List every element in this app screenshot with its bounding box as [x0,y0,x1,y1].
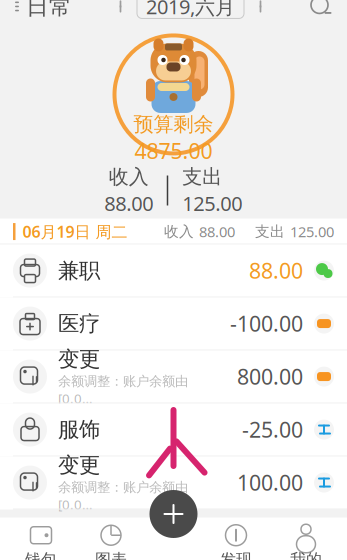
button[interactable]: 搜索 [295,0,347,28]
staticText: 收入 [109,164,149,189]
staticText: 2019,六月 [146,0,235,20]
staticText: 发现 [220,550,252,560]
staticText: 图表 [95,550,127,560]
staticText: 125.00 [290,222,334,241]
staticText: 支出 [255,223,285,241]
staticText: 4875.00 [134,137,212,165]
staticText: -100.00 [230,309,303,338]
staticText: 125.00 [182,190,242,217]
staticText: 支出 [182,164,222,189]
staticText: 服饰 [58,416,100,443]
staticText: 我的 [290,550,322,560]
staticText: 06月19日 周二 [22,221,127,242]
staticText: 预算剩余 [133,112,213,137]
staticText: 医疗 [58,310,100,337]
button[interactable]: 下个月 [251,0,273,21]
staticText: 100.00 [237,468,303,497]
staticText: 收入 [164,223,194,241]
staticText: 兼职 [58,257,100,284]
staticText: 88.00 [104,190,153,217]
button[interactable]: 医疗 [0,298,347,351]
button[interactable]: 2019,六月 [137,0,244,18]
staticText: 变更 [58,346,100,372]
button[interactable]: 钱包 [6,521,76,560]
staticText: 钱包 [25,550,57,560]
button[interactable]: 变更 [0,457,347,510]
button[interactable]: 发现 [201,521,271,560]
staticText: -25.00 [242,415,303,444]
button[interactable]: 预算剩余 4875.00 [111,32,235,156]
staticText: 88.00 [249,256,303,285]
button[interactable]: 兼职 [0,245,347,298]
button[interactable]: 图表 [76,521,146,560]
button[interactable]: 我的 [271,521,341,560]
button[interactable]: 服饰 [0,404,347,457]
staticText: 余额调整：账户余额由[0.0… [58,373,188,407]
button[interactable]: 添加记录 [149,490,197,538]
button[interactable]: 变更 [0,351,347,404]
button[interactable]: 上个月 [108,0,130,21]
staticText: 余额调整：账户余额由[0.0… [58,479,188,513]
staticText: 88.00 [199,222,235,241]
button[interactable]: 日常 [0,0,86,28]
staticText: 日常 [26,0,72,20]
staticText: 变更 [58,452,100,478]
staticText: 800.00 [237,362,303,391]
